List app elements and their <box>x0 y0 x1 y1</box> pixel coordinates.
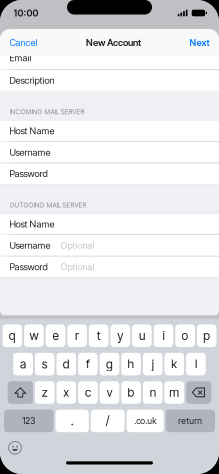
staticText: e <box>52 328 58 343</box>
button[interactable]: f <box>78 353 98 375</box>
staticText: Cancel <box>9 37 37 48</box>
staticText: p <box>203 328 210 343</box>
staticText: Optional <box>60 240 94 251</box>
button[interactable]: r <box>67 324 87 347</box>
staticText: New Account <box>86 37 141 48</box>
button[interactable]: / <box>91 410 125 432</box>
staticText: Username <box>9 240 50 251</box>
button[interactable]: Username <box>0 142 219 163</box>
button[interactable]: z <box>35 381 54 404</box>
button[interactable]: q <box>2 324 22 347</box>
button[interactable]: u <box>132 324 152 347</box>
staticText: b <box>128 385 135 400</box>
staticText: k <box>171 357 177 371</box>
staticText: l <box>195 357 197 371</box>
button[interactable]: i <box>154 324 173 347</box>
button[interactable]: t <box>89 324 108 347</box>
button[interactable]: p <box>197 324 216 347</box>
staticText: m <box>169 385 179 400</box>
staticText: Optional <box>60 261 94 273</box>
staticText: r <box>75 328 79 343</box>
staticText: / <box>106 414 110 428</box>
button[interactable]: Host Name <box>0 214 219 234</box>
staticText: w <box>29 328 38 343</box>
button[interactable]: y <box>110 324 130 347</box>
button[interactable]: 123 <box>4 410 53 432</box>
staticText: return <box>178 416 202 426</box>
button[interactable]: o <box>175 324 195 347</box>
button[interactable]: Email <box>0 56 219 69</box>
staticText: Password <box>9 261 47 273</box>
button[interactable]: e <box>46 324 65 347</box>
button[interactable]: Next <box>183 30 219 55</box>
button[interactable]: v <box>100 381 119 404</box>
staticText: 123 <box>22 416 35 426</box>
staticText: o <box>182 328 189 343</box>
button[interactable]: a <box>13 353 33 375</box>
staticText: OUTGOING MAIL SERVER <box>9 201 86 209</box>
staticText: n <box>150 385 156 400</box>
staticText: x <box>63 385 69 400</box>
button[interactable]: l <box>186 353 206 375</box>
button[interactable]: d <box>56 353 76 375</box>
staticText: c <box>85 385 91 400</box>
staticText: Host Name <box>9 218 54 230</box>
button[interactable]: . <box>55 410 89 432</box>
staticText: . <box>71 414 74 428</box>
button[interactable]: w <box>24 324 44 347</box>
staticText: 10:00 <box>13 7 38 19</box>
button[interactable]: Password <box>0 256 219 277</box>
staticText: i <box>162 328 164 343</box>
staticText: Host Name <box>9 125 54 136</box>
button[interactable]: Shift <box>8 381 33 404</box>
button[interactable]: k <box>164 353 184 375</box>
button[interactable]: Delete <box>186 381 211 404</box>
button[interactable]: Password <box>0 163 219 184</box>
staticText: u <box>139 328 145 343</box>
staticText: .co.uk <box>134 416 156 426</box>
staticText: d <box>63 357 70 371</box>
button[interactable]: m <box>164 381 184 404</box>
button[interactable]: j <box>143 353 162 375</box>
staticText: h <box>128 357 135 371</box>
button[interactable]: g <box>100 353 119 375</box>
staticText: v <box>106 385 112 400</box>
button[interactable]: s <box>35 353 54 375</box>
staticText: Next <box>189 37 209 48</box>
button[interactable]: .co.uk <box>127 410 164 432</box>
button[interactable]: n <box>143 381 162 404</box>
staticText: g <box>106 357 113 371</box>
staticText: Username <box>9 147 50 158</box>
staticText: q <box>9 328 16 343</box>
staticText: z <box>42 385 48 400</box>
button[interactable]: Cancel <box>0 30 43 55</box>
button[interactable]: Username <box>0 235 219 256</box>
button[interactable]: return <box>166 410 215 432</box>
staticText: Description <box>9 75 54 86</box>
staticText: s <box>42 357 48 371</box>
staticText: f <box>86 357 90 371</box>
staticText: Password <box>9 168 47 179</box>
staticText: a <box>20 357 26 371</box>
button[interactable]: Emoji keyboard <box>3 441 27 455</box>
button[interactable]: h <box>121 353 141 375</box>
button[interactable]: b <box>121 381 141 404</box>
staticText: t <box>97 328 101 343</box>
staticText: j <box>152 357 154 371</box>
staticText: y <box>117 328 123 343</box>
button[interactable]: c <box>78 381 98 404</box>
button[interactable]: Host Name <box>0 120 219 141</box>
button[interactable]: Description <box>0 70 219 91</box>
staticText: Email <box>9 52 31 63</box>
staticText: INCOMING MAIL SERVER <box>9 108 84 116</box>
button[interactable]: x <box>56 381 76 404</box>
